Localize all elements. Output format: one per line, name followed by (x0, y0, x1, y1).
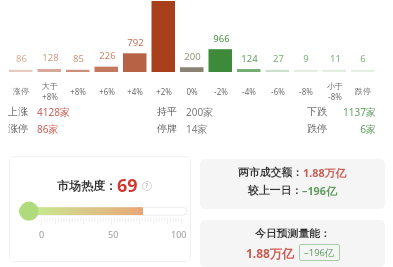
staticText: 涨停 (13, 86, 29, 96)
staticText: 下跌 (307, 105, 327, 118)
staticText: 1.88万亿 (246, 245, 294, 261)
staticText: 大于 (42, 81, 58, 91)
staticText: 小于 (327, 81, 343, 91)
staticText: 200 (184, 50, 201, 63)
staticText: +8% (42, 91, 58, 102)
staticText: 14家 (186, 122, 228, 136)
staticText: 上涨 (8, 105, 28, 118)
staticText: -8% (299, 86, 313, 97)
staticText: -2% (214, 86, 228, 97)
staticText: +4% (127, 86, 143, 97)
staticText: 0 (39, 228, 45, 240)
staticText: 27 (273, 52, 284, 65)
staticText: 涨停 (8, 122, 28, 135)
staticText: 9 (303, 52, 309, 65)
staticText: 6家 (336, 122, 376, 136)
staticText: 今日预测量能： (255, 227, 331, 241)
staticText: 50 (108, 228, 119, 240)
button[interactable]: 热度说明 (142, 181, 152, 191)
staticText: 124 (241, 52, 258, 65)
staticText: –196亿 (304, 246, 335, 259)
staticText: 11 (330, 52, 341, 65)
staticText: +8% (70, 86, 86, 97)
staticText: 市场热度： (57, 178, 117, 193)
staticText: 持平 (157, 105, 177, 118)
staticText: 86 (16, 52, 27, 65)
staticText: 跌停 (355, 86, 371, 96)
button[interactable]: 两市成交额： (200, 159, 385, 209)
staticText: 69 (117, 173, 138, 198)
staticText: 85 (73, 52, 84, 65)
staticText: –196亿 (302, 183, 337, 198)
staticText: ? (145, 181, 149, 191)
button[interactable]: 市场热度： (9, 156, 191, 262)
staticText: 128 (42, 51, 59, 64)
staticText: 86家 (37, 122, 79, 136)
staticText: 4128家 (37, 105, 79, 119)
staticText: -4% (242, 86, 256, 97)
staticText: -6% (271, 86, 285, 97)
staticText: +2% (156, 86, 172, 97)
staticText: 1.88万亿 (303, 165, 347, 180)
staticText: 966 (213, 32, 230, 45)
staticText: 1137家 (336, 105, 376, 119)
button[interactable]: 今日预测量能： (200, 220, 385, 267)
staticText: 100 (171, 228, 187, 240)
staticText: 两市成交额： (238, 166, 303, 180)
staticText: -8% (328, 91, 342, 102)
staticText: 792 (127, 36, 144, 49)
staticText: +6% (99, 86, 115, 97)
staticText: 跌停 (307, 122, 327, 135)
staticText: 200家 (186, 105, 228, 119)
staticText: 较上一日： (248, 184, 302, 198)
staticText: 6 (360, 52, 366, 65)
staticText: 停牌 (157, 122, 177, 135)
staticText: 0% (186, 86, 198, 97)
staticText: 226 (99, 49, 116, 62)
